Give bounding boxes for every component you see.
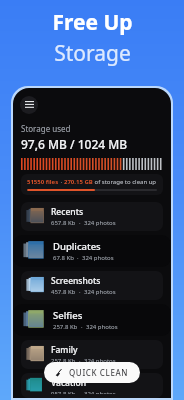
staticText: of storage to clean up [93,178,157,186]
button[interactable]: Vacation [21,373,163,398]
staticText: 657.8 Kb [51,219,76,227]
staticText: 257.8 Kb [51,357,76,365]
staticText: Storage used [21,123,71,134]
staticText: 457.8 Kb [51,288,76,296]
button[interactable]: Duplicates [13,235,171,267]
staticText: 324 photos [84,390,116,394]
staticText: Free Up [52,8,133,37]
staticText: 257.8 Kb [53,323,78,331]
staticText: Vacation [51,377,87,389]
staticText: 67.8 Kb [53,254,74,262]
staticText: QUICK CLEAN [69,367,129,378]
staticText: · [76,357,84,365]
button[interactable]: Family [21,340,163,369]
staticText: 324 photos [84,288,116,296]
staticText: 957.8 Kb [51,390,76,394]
staticText: 324 photos [84,219,116,227]
staticText: · [74,254,82,262]
button[interactable]: Screenshots [21,271,163,300]
staticText: Duplicates [53,240,101,253]
button[interactable]: 51550 files [21,174,163,195]
staticText: 270.15 GB [64,178,93,186]
staticText: 324 photos [86,323,118,331]
staticText: Screenshots [51,275,101,287]
staticText: Recents [51,206,84,218]
staticText: 97,6 MB / 1024 MB [21,136,128,152]
staticText: 324 photos [82,254,114,262]
button[interactable]: QUICK CLEAN [44,362,140,383]
button[interactable]: Recents [21,202,163,231]
staticText: Selfies [53,309,83,322]
button[interactable]: Selfies [13,304,171,336]
staticText: · [76,219,84,227]
staticText: 324 photos [84,357,116,365]
staticText: 51550 files [27,178,59,186]
staticText: · [76,288,84,296]
button[interactable]: Menu [20,96,38,114]
staticText: Family [51,344,78,356]
staticText: · [78,323,86,331]
staticText: Storage [54,39,131,68]
staticText: · [59,178,64,186]
